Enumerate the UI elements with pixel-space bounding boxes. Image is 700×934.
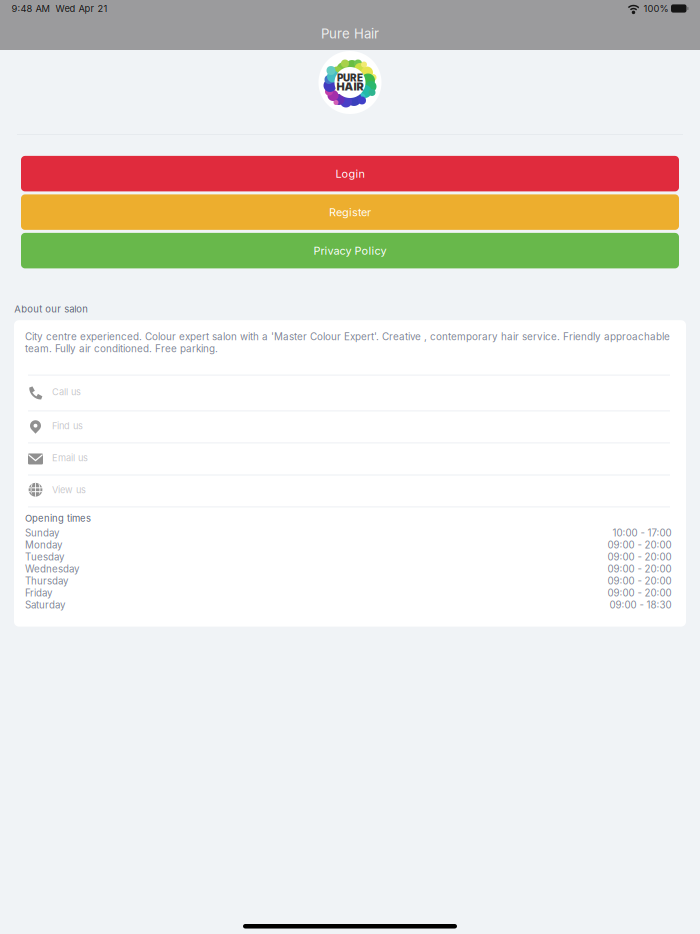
staticText: Sunday — [25, 527, 59, 539]
staticText: 09:00 - 20:00 — [607, 575, 671, 587]
staticText: Friday — [25, 587, 52, 599]
staticText: PURE — [337, 72, 363, 84]
staticText: Wednesday — [25, 563, 79, 575]
button[interactable]: Privacy Policy — [21, 233, 679, 268]
staticText: 09:00 - 20:00 — [607, 539, 671, 551]
staticText: 09:00 - 20:00 — [607, 587, 671, 599]
staticText: Register — [329, 205, 371, 219]
staticText: Privacy Policy — [313, 244, 386, 257]
staticText: Opening times — [25, 513, 91, 524]
staticText: 09:00 - 20:00 — [607, 551, 671, 563]
button[interactable]: Call us — [14, 376, 686, 411]
button[interactable]: Login — [21, 156, 679, 191]
staticText: 100% — [643, 3, 668, 14]
button[interactable]: Email us — [14, 443, 686, 475]
staticText: Find us — [52, 420, 83, 431]
staticText: Pure Hair — [321, 26, 379, 42]
staticText: Thursday — [25, 575, 68, 587]
button[interactable]: View us — [14, 475, 686, 507]
staticText: Tuesday — [25, 551, 64, 563]
staticText: Wed Apr 21 — [55, 3, 107, 14]
staticText: Monday — [25, 539, 62, 551]
staticText: 09:00 - 18:30 — [609, 599, 671, 611]
button[interactable]: Find us — [14, 411, 686, 443]
staticText: HAIR — [336, 80, 363, 93]
staticText: Call us — [52, 386, 81, 397]
staticText: 9:48 AM — [11, 3, 49, 14]
button[interactable]: Register — [21, 194, 679, 230]
staticText: Saturday — [25, 599, 65, 611]
staticText: Email us — [52, 452, 88, 463]
staticText: 09:00 - 20:00 — [607, 563, 671, 575]
staticText: Login — [335, 167, 364, 180]
staticText: 10:00 - 17:00 — [612, 527, 671, 539]
staticText: View us — [52, 484, 86, 495]
staticText: City centre experienced. Colour expert s… — [25, 331, 670, 355]
staticText: About our salon — [14, 303, 88, 315]
